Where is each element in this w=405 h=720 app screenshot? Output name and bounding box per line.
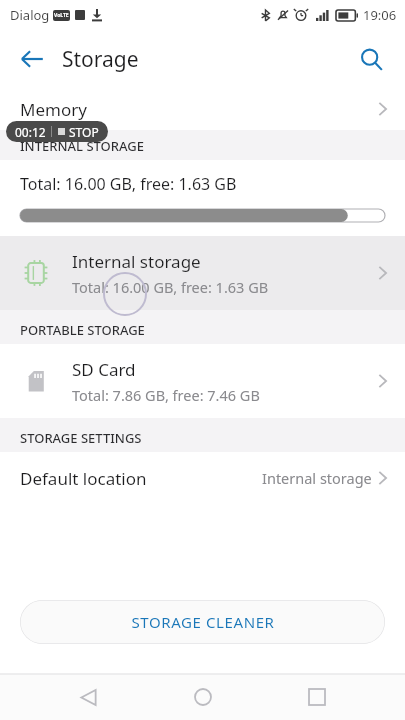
staticText: Total: 16.00 GB, free: 1.63 GB bbox=[72, 277, 269, 297]
button[interactable]: 00:12 bbox=[15, 121, 99, 142]
button[interactable]: Back bbox=[61, 674, 115, 720]
staticText: 00:12 bbox=[15, 124, 46, 140]
button[interactable]: STORAGE CLEANER bbox=[20, 600, 385, 644]
staticText: 19:06 bbox=[363, 6, 397, 24]
button[interactable]: Home bbox=[176, 674, 230, 720]
button[interactable]: Search bbox=[347, 35, 395, 83]
staticText: STORAGE SETTINGS bbox=[20, 429, 142, 447]
staticText: Storage bbox=[62, 45, 139, 74]
staticText: STOP bbox=[69, 124, 99, 140]
staticText: SD Card bbox=[72, 358, 136, 381]
staticText: Default location bbox=[20, 467, 147, 490]
staticText: Total: 16.00 GB, free: 1.63 GB bbox=[20, 173, 237, 195]
staticText: VoLTE bbox=[54, 12, 69, 19]
button[interactable]: SD Card bbox=[0, 344, 405, 418]
staticText: STORAGE CLEANER bbox=[131, 612, 275, 632]
button[interactable]: Default location bbox=[0, 452, 405, 504]
staticText: Internal storage bbox=[72, 250, 201, 273]
button[interactable]: Back bbox=[8, 35, 56, 83]
staticText: Internal storage bbox=[262, 468, 372, 488]
staticText: Dialog bbox=[10, 6, 50, 24]
button[interactable]: Internal storage bbox=[0, 236, 405, 310]
staticText: Total: 7.86 GB, free: 7.46 GB bbox=[72, 385, 260, 405]
staticText: Memory bbox=[20, 98, 87, 121]
staticText: INTERNAL STORAGE bbox=[20, 137, 144, 155]
staticText: PORTABLE STORAGE bbox=[20, 321, 145, 339]
button[interactable]: Recents bbox=[290, 674, 344, 720]
button[interactable]: Memory bbox=[0, 88, 405, 130]
